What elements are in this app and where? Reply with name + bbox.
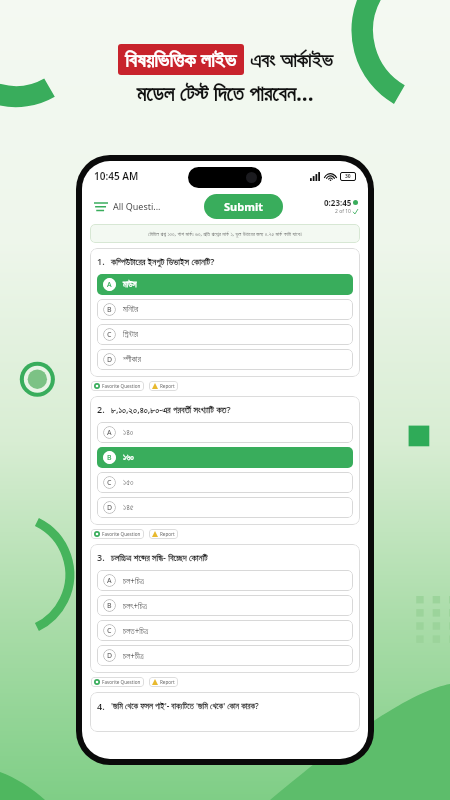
staticText: Report [160,679,175,685]
button[interactable]: D [97,497,353,518]
staticText: প্রিন্টার [123,331,138,339]
button[interactable]: D [97,349,353,370]
staticText: চলৎ+চিত্র [123,600,147,611]
staticText: ১৫০ [123,479,134,487]
staticText: A [107,428,112,438]
staticText: A [107,280,112,290]
staticText: C [107,478,112,488]
staticText: Report [160,531,175,537]
staticText: চলচ্চিত্র শব্দের সন্ধি- বিচ্ছেদ কোনটি [111,551,208,563]
button[interactable]: C [97,620,353,641]
staticText: 2. [97,403,105,415]
button[interactable]: Report [149,677,178,687]
staticText: টোটাল প্রশ্ন ১০০, পাশ মার্কঃ ৬০, প্রতি প… [148,230,302,237]
staticText: B [107,601,112,611]
staticText: C [107,626,112,636]
button[interactable]: Favorite Question [91,381,144,391]
staticText: Favorite Question [102,531,141,537]
staticText: A [107,576,112,586]
button[interactable]: A [97,570,353,591]
button[interactable]: Submit [204,194,283,219]
button[interactable]: B [97,299,353,320]
staticText: Submit [224,199,263,214]
staticText: D [107,503,113,513]
button[interactable]: Report [149,529,178,539]
button[interactable]: A [97,422,353,443]
staticText: বিষয়ভিত্তিক লাইভ [125,46,237,73]
staticText: Favorite Question [102,679,141,685]
staticText: ১৪৫ [123,504,134,512]
staticText: 2 of 10 [335,208,351,215]
staticText: চলত+চিত্র [123,625,149,636]
staticText: কম্পিউটারের ইনপুট ডিভাইস কোনটি? [111,255,215,267]
staticText: 1. [97,255,105,267]
staticText: 4. [97,700,105,712]
staticText: Report [160,383,175,389]
staticText: মাউস [123,281,137,289]
staticText: B [107,453,112,463]
staticText: চল+চিত্র [123,575,144,586]
staticText: চল+চীত্র [123,650,144,661]
staticText: ৮,১০,২০,৪০,৮০-এর পরবর্তী সংখ্যাটি কত? [111,403,231,415]
staticText: মনিটর [123,306,139,314]
staticText: C [107,330,112,340]
staticText: D [107,651,113,661]
button[interactable]: Filter questions [92,198,163,214]
button[interactable]: C [97,472,353,493]
button[interactable]: D [97,645,353,666]
staticText: স্পীকার [123,356,141,364]
staticText: B [107,305,112,315]
staticText: এবং আর্কাইভ [250,46,333,73]
staticText: 'জমি থেকে ফসল পাই'- বাক্যটিতে 'জমি থেকে'… [111,700,259,711]
staticText: ১৪০ [123,429,134,437]
other: Filter questions [94,201,108,212]
staticText: 3. [97,551,105,563]
staticText: 10:45 AM [94,169,139,183]
button[interactable]: C [97,324,353,345]
button[interactable]: Favorite Question [91,529,144,539]
staticText: D [107,355,113,365]
button[interactable]: Report [149,381,178,391]
button[interactable]: A [97,274,353,295]
staticText: Favorite Question [102,383,141,389]
staticText: 30 [345,173,351,180]
button[interactable]: B [97,595,353,616]
staticText: All Questi... [113,200,161,212]
staticText: মডেল টেস্ট দিতে পারবেন... [136,79,314,108]
button[interactable]: Favorite Question [91,677,144,687]
button[interactable]: B [97,447,353,468]
staticText: 0:23:45 [324,197,352,208]
staticText: ১৬০ [123,454,134,462]
